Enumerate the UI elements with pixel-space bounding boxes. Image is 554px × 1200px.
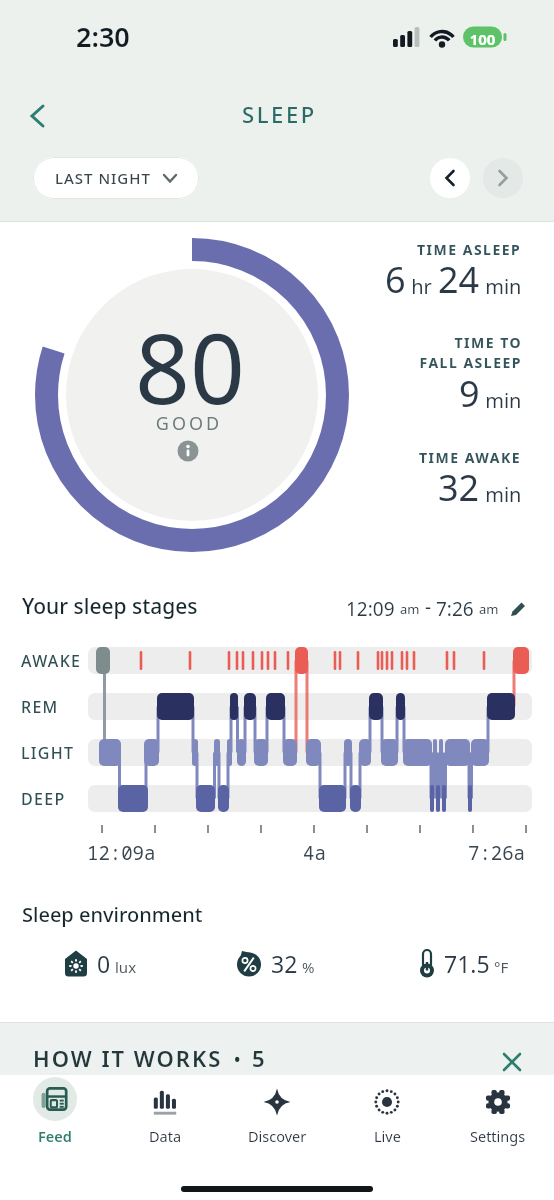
button[interactable] [502, 1052, 522, 1072]
staticText: GOOD [0, 411, 378, 436]
button[interactable] [18, 95, 58, 135]
staticText: °F [494, 957, 509, 977]
staticText: min [480, 481, 522, 508]
staticText: 4a [303, 840, 326, 866]
staticText: % [302, 957, 315, 977]
staticText: 32 [271, 948, 298, 979]
staticText: 7:26 [436, 596, 479, 622]
button[interactable] [177, 440, 199, 462]
staticText: 9 [459, 369, 480, 418]
staticText: SLEEP [242, 99, 317, 129]
staticText: Your sleep stages [22, 592, 198, 621]
staticText: 71.5 [444, 948, 490, 979]
staticText: Live [374, 1126, 401, 1146]
staticText: Sleep environment [22, 901, 203, 928]
staticText: 32 [438, 463, 480, 512]
staticText: 12:09 [346, 596, 400, 622]
staticText: AWAKE [21, 650, 82, 672]
staticText: 7:26a [468, 840, 526, 866]
staticText: am [479, 600, 499, 618]
staticText: hr [406, 273, 438, 300]
button[interactable]: LAST NIGHT [33, 157, 199, 199]
staticText: LAST NIGHT [55, 168, 151, 188]
staticText: Feed [38, 1126, 72, 1146]
staticText: TIME AWAKE [419, 448, 522, 467]
staticText: Settings [470, 1126, 526, 1146]
staticText: 2:30 [76, 18, 130, 55]
staticText: Discover [248, 1126, 307, 1146]
button[interactable] [483, 158, 523, 198]
staticText: 80 [0, 301, 380, 432]
staticText: TIME ASLEEP [417, 240, 522, 259]
staticText: DEEP [21, 788, 66, 810]
staticText: min [480, 273, 522, 300]
button[interactable]: Data [133, 1077, 197, 1146]
button[interactable]: Settings [466, 1077, 530, 1146]
button[interactable]: Discover [245, 1077, 309, 1146]
staticText: Data [149, 1126, 182, 1146]
button[interactable] [430, 158, 470, 198]
staticText: 5 [252, 1043, 265, 1073]
staticText: am [400, 600, 420, 618]
button[interactable] [508, 599, 529, 620]
button[interactable]: Live [355, 1077, 419, 1146]
staticText: 100 [463, 29, 502, 49]
staticText: min [480, 387, 522, 414]
staticText: 6 [385, 255, 406, 304]
staticText: LIGHT [21, 742, 75, 764]
staticText: 24 [438, 255, 480, 304]
staticText: 12:09a [87, 840, 156, 866]
button[interactable]: Feed [23, 1077, 87, 1146]
staticText: • [234, 1048, 241, 1071]
staticText: HOW IT WORKS [33, 1043, 223, 1073]
staticText: - [420, 594, 436, 620]
staticText: lux [115, 957, 137, 977]
staticText: REM [21, 696, 59, 718]
staticText: 0 [97, 948, 111, 979]
staticText: TIME TO FALL ASLEEP [419, 333, 522, 373]
